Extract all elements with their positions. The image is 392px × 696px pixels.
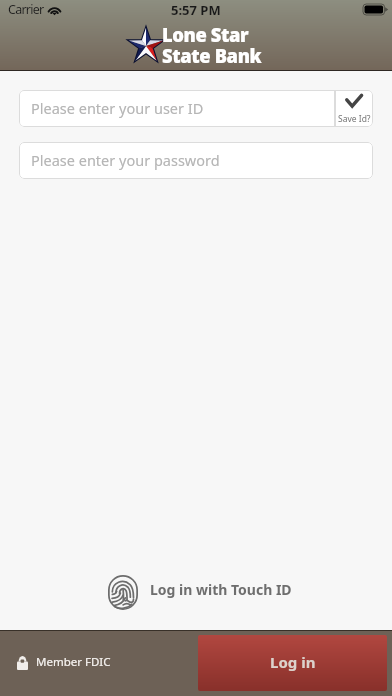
button[interactable]: Please enter your password bbox=[19, 142, 373, 179]
staticText: Carrier bbox=[8, 1, 44, 18]
button[interactable]: Save Id bbox=[335, 90, 373, 127]
staticText: 5:57 PM bbox=[171, 1, 221, 19]
staticText: Please enter your password bbox=[31, 150, 220, 170]
staticText: Save Id? bbox=[338, 113, 371, 125]
staticText: State Bank bbox=[162, 42, 261, 69]
button[interactable]: Log in bbox=[198, 635, 387, 691]
button[interactable]: Member FDIC bbox=[17, 654, 111, 670]
staticText: Please enter your user ID bbox=[31, 98, 204, 118]
staticText: Lone Star bbox=[162, 21, 249, 48]
staticText: Log in with Touch ID bbox=[150, 580, 292, 599]
button[interactable]: Please enter your user ID bbox=[19, 90, 335, 127]
staticText: Log in bbox=[270, 652, 316, 672]
staticText: Member FDIC bbox=[36, 654, 111, 670]
button[interactable]: Log in with Touch ID bbox=[108, 575, 292, 610]
